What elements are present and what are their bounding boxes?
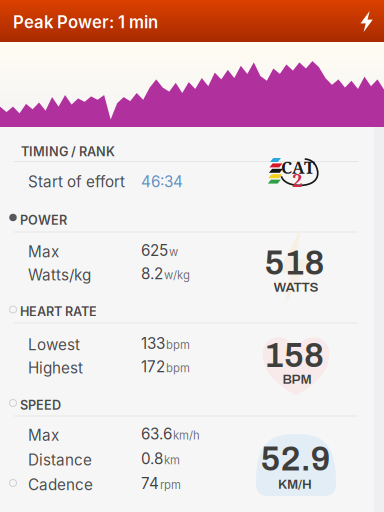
staticText: Highest [28, 359, 83, 377]
staticText: 63.6 [141, 425, 172, 443]
staticText: Start of effort [28, 172, 125, 191]
staticText: 8.2 [141, 264, 163, 283]
staticText: Peak Power: 1 min [13, 12, 158, 32]
staticText: Max [28, 242, 59, 261]
staticText: 133 [141, 334, 165, 353]
staticText: rpm [160, 478, 181, 492]
staticText: Watts/kg [28, 266, 91, 284]
staticText: HEART RATE [20, 304, 97, 319]
staticText: SPEED [20, 397, 61, 413]
staticText: BPM [282, 372, 311, 386]
staticText: 52.9 [260, 440, 330, 478]
staticText: Max [28, 426, 59, 444]
staticText: WATTS [273, 280, 318, 294]
staticText: 158 [264, 336, 324, 374]
staticText: 625 [141, 241, 168, 260]
staticText: w [169, 245, 178, 259]
staticText: 518 [264, 244, 324, 282]
staticText: bpm [166, 361, 190, 375]
staticText: w/kg [164, 268, 190, 282]
staticText: 172 [141, 357, 165, 376]
staticText: 0.8 [141, 449, 163, 468]
staticText: CAT [281, 156, 315, 179]
staticText: 74 [141, 474, 159, 493]
staticText: Distance [28, 451, 92, 469]
staticText: Cadence [28, 475, 93, 494]
staticText: bpm [166, 338, 190, 352]
staticText: km [164, 453, 180, 467]
staticText: 46:34 [141, 172, 183, 191]
button[interactable]: 46:34 [0, 0, 260, 16]
staticText: KM/H [278, 477, 312, 491]
staticText: 2 [292, 167, 303, 192]
staticText: TIMING / RANK [21, 144, 115, 159]
button[interactable]: Peak Power: 1 min [0, 0, 384, 42]
staticText: POWER [20, 212, 67, 228]
staticText: Lowest [28, 335, 80, 354]
staticText: km/h [173, 429, 200, 442]
